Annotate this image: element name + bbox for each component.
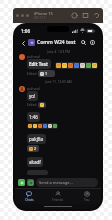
- staticText: Chats: [25, 198, 34, 202]
- staticText: 1:46: [29, 114, 38, 120]
- staticText: 1 lucky: [45, 71, 53, 76]
- button[interactable]: yo!: [27, 91, 38, 101]
- staticText: yo!: [29, 93, 36, 99]
- button[interactable]: akadf: [27, 157, 43, 167]
- button[interactable]: Attach: [18, 179, 25, 186]
- staticText: iPhone 15: [34, 11, 53, 16]
- button[interactable]: [38, 102, 46, 108]
- button[interactable]: Send a message...: [36, 178, 98, 187]
- button[interactable]: Conversation info: [88, 38, 97, 47]
- staticText: June 4 1:03 PM: [47, 50, 70, 54]
- staticText: June 11, 12:05 AM: [45, 80, 72, 84]
- button[interactable]: Comm W24 test: [28, 39, 79, 46]
- button[interactable]: Search: [79, 38, 88, 47]
- staticText: Friends: [52, 198, 64, 202]
- button[interactable]: 1 lucky: [38, 70, 55, 77]
- button[interactable]: Rotate: [71, 12, 78, 19]
- staticText: pakjfia: [29, 136, 44, 142]
- button[interactable]: Avatar: [19, 54, 25, 60]
- staticText: iOS 17.2: [34, 16, 46, 20]
- button[interactable]: Edit Test: [27, 59, 51, 69]
- button[interactable]: 2: [27, 145, 39, 152]
- staticText: pufnoul: [27, 86, 40, 91]
- staticText: Comm W24 test: [37, 39, 76, 46]
- button[interactable]: [16, 14, 19, 17]
- staticText: Edited: [27, 103, 37, 107]
- button[interactable]: Chats: [15, 188, 43, 204]
- staticText: 2: [34, 146, 37, 151]
- button[interactable]: Screenshot: [82, 12, 89, 19]
- button[interactable]: [21, 14, 24, 17]
- button[interactable]: Gallery: [27, 179, 34, 186]
- staticText: 1:06: [21, 28, 30, 34]
- button[interactable]: Avatar: [19, 86, 25, 92]
- button[interactable]: Friends: [43, 188, 72, 204]
- staticText: Edited: [27, 72, 37, 76]
- button[interactable]: 1:46: [27, 112, 40, 122]
- staticText: Send a message...: [39, 180, 73, 185]
- button[interactable]: pakjfia: [27, 134, 46, 144]
- button[interactable]: You: [72, 188, 101, 204]
- staticText: akadf: [29, 159, 41, 165]
- staticText: You: [84, 198, 90, 202]
- button[interactable]: Back: [19, 39, 27, 47]
- button[interactable]: [26, 14, 29, 17]
- button[interactable]: Reactions: [27, 123, 58, 129]
- button[interactable]: Add reaction: [55, 62, 98, 69]
- staticText: Edit Test: [29, 61, 49, 67]
- staticText: pufnoul: [27, 54, 40, 59]
- button[interactable]: papdfia: [27, 170, 48, 175]
- button[interactable]: Record: [93, 12, 100, 19]
